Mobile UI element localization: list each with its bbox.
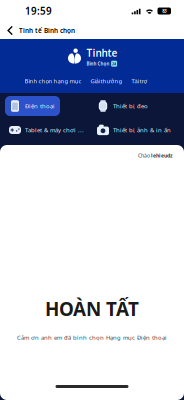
button[interactable]: Back xyxy=(0,23,19,37)
staticText: Thiết bị đeo xyxy=(113,102,148,110)
staticText: Tablet & máy chơi ... xyxy=(25,126,84,134)
staticText: Điện thoại xyxy=(25,102,55,110)
staticText: 83 xyxy=(162,8,166,14)
button[interactable]: Giải thưởng xyxy=(90,75,122,87)
staticText: Bình chọn hạng mục xyxy=(24,77,81,85)
button[interactable]: Thiết bị đeo xyxy=(93,96,181,116)
staticText: Tinh tế Bình chọn xyxy=(19,26,75,35)
staticText: Tinhte xyxy=(86,46,117,60)
staticText: Tài trợ xyxy=(131,77,147,85)
staticText: 19:59 xyxy=(25,4,52,18)
staticText: HOÀN TẤT xyxy=(45,296,139,321)
staticText: Cảm ơn anh em đã bình chọn Hạng mục Điện… xyxy=(17,333,167,341)
staticText: Chào xyxy=(138,152,151,159)
staticText: Bình Chọn xyxy=(86,61,109,67)
button[interactable]: Tablet & máy chơi ... xyxy=(5,120,93,140)
staticText: Giải thưởng xyxy=(90,77,122,85)
staticText: lehieudz xyxy=(151,152,172,159)
button[interactable]: Bình chọn hạng mục xyxy=(24,75,81,87)
button[interactable]: Điện thoại xyxy=(5,96,93,116)
button[interactable]: Thiết bị ảnh & in ấn xyxy=(93,120,181,140)
staticText: 24 xyxy=(112,61,116,66)
button[interactable]: Tài trợ xyxy=(131,75,147,87)
staticText: Thiết bị ảnh & in ấn xyxy=(113,126,171,134)
